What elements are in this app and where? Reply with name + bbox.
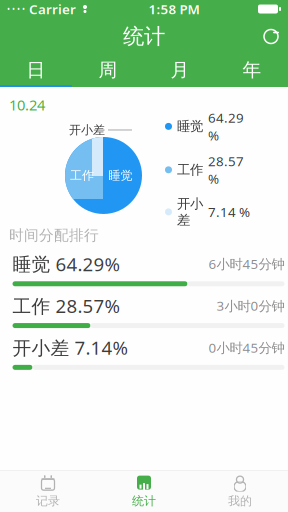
staticText: 开小差 <box>177 195 203 228</box>
staticText: 开小差 <box>69 123 105 137</box>
staticText: 年 <box>242 58 261 81</box>
staticText: • • • • <box>7 4 25 14</box>
staticText: Carrier <box>29 0 76 18</box>
button[interactable]: 记录 <box>0 471 96 512</box>
staticText: 10.24 <box>9 95 45 114</box>
staticText: 64.29 % <box>208 109 244 144</box>
staticText: 3小时0分钟 <box>216 297 284 314</box>
staticText: 日 <box>26 58 45 81</box>
staticText: 1:58 PM <box>148 0 199 18</box>
staticText: 记录 <box>36 494 60 508</box>
staticText: 工作 <box>70 168 94 183</box>
staticText: 睡觉 64.29% <box>12 251 120 276</box>
staticText: 睡觉 <box>108 168 132 183</box>
staticText: 0小时45分钟 <box>208 339 284 356</box>
staticText: 工作 28.57% <box>12 293 120 318</box>
staticText: 月 <box>170 58 189 81</box>
staticText: 统计 <box>132 494 156 508</box>
staticText: 统计 <box>123 23 165 50</box>
button[interactable]: 周 <box>72 55 144 87</box>
button[interactable]: 年 <box>216 55 288 87</box>
button[interactable]: 日 <box>0 55 72 87</box>
staticText: 6小时45分钟 <box>208 255 284 273</box>
staticText: 开小差 7.14% <box>12 335 128 360</box>
staticText: 周 <box>98 58 117 81</box>
staticText: 时间分配排行 <box>9 226 99 244</box>
button[interactable]: Refresh <box>254 18 288 55</box>
button[interactable]: 月 <box>144 55 216 87</box>
button[interactable]: 统计 <box>96 471 192 512</box>
staticText: 工作 <box>177 162 203 178</box>
staticText: 我的 <box>228 494 252 508</box>
staticText: 7.14 % <box>208 203 250 221</box>
staticText: 28.57 % <box>208 152 244 187</box>
button[interactable]: 我的 <box>192 471 288 512</box>
staticText: 睡觉 <box>177 118 203 135</box>
